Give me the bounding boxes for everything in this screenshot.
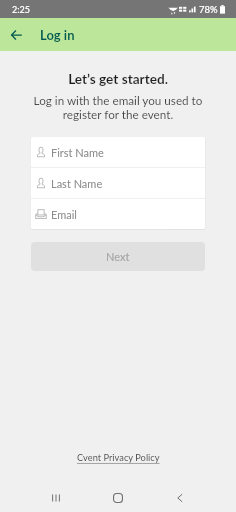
staticText: 78%: [199, 4, 218, 15]
button[interactable]: Recent apps: [42, 484, 70, 512]
staticText: 2:25: [12, 4, 30, 15]
staticText: Last Name: [51, 177, 103, 190]
button[interactable]: Cvent Privacy Policy: [73, 450, 164, 465]
staticText: Log in with the email you used to regist…: [0, 93, 236, 121]
button[interactable]: Last Name: [31, 168, 205, 198]
button[interactable]: Back: [166, 484, 194, 512]
staticText: Next: [106, 250, 130, 263]
staticText: Log in: [40, 27, 75, 43]
button[interactable]: Home: [104, 484, 132, 512]
staticText: First Name: [51, 146, 104, 159]
button[interactable]: First Name: [31, 137, 205, 167]
staticText: Email: [51, 208, 77, 221]
button[interactable]: Back: [0, 18, 33, 51]
button[interactable]: Next: [31, 242, 205, 271]
staticText: Cvent Privacy Policy: [77, 452, 160, 463]
staticText: Let’s get started.: [0, 71, 236, 87]
button[interactable]: Email: [31, 199, 205, 229]
